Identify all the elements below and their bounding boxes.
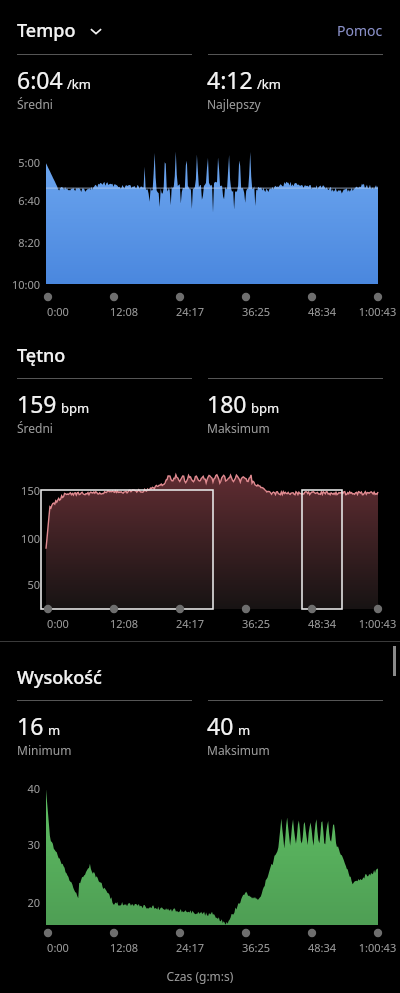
staticText: 48:34	[289, 616, 355, 631]
staticText: 20	[0, 895, 40, 910]
staticText: /km	[257, 75, 281, 93]
staticText: /km	[67, 75, 91, 93]
staticText: Pomoc	[337, 21, 383, 40]
staticText: 100	[0, 531, 40, 546]
staticText: 24:17	[157, 304, 223, 319]
staticText: 4:12	[207, 64, 253, 95]
staticText: 0:00	[25, 616, 91, 631]
staticText: 16	[17, 710, 44, 741]
staticText: bpm	[61, 399, 90, 417]
staticText: Maksimum	[207, 742, 270, 758]
staticText: 1:00:43	[355, 304, 400, 319]
staticText: 1:00:43	[355, 940, 400, 955]
staticText: 0:00	[25, 304, 91, 319]
staticText: 48:34	[289, 304, 355, 319]
staticText: 8:20	[0, 235, 40, 250]
staticText: m	[238, 721, 251, 739]
staticText: 24:17	[157, 940, 223, 955]
staticText: 12:08	[91, 940, 157, 955]
staticText: 30	[0, 837, 40, 852]
staticText: 50	[0, 577, 40, 592]
button[interactable]: Tętno	[17, 343, 66, 368]
staticText: Najlepszy	[207, 96, 261, 112]
staticText: 36:25	[223, 616, 289, 631]
staticText: 12:08	[91, 616, 157, 631]
staticText: 36:25	[223, 304, 289, 319]
staticText: Tętno	[17, 343, 66, 368]
button[interactable]: Wysokość	[17, 665, 102, 690]
staticText: m	[48, 721, 61, 739]
staticText: 159	[17, 388, 57, 419]
staticText: Czas (g:m:s)	[0, 968, 400, 984]
staticText: 150	[0, 483, 40, 498]
button[interactable]: Tempo	[17, 18, 104, 43]
staticText: Wysokość	[17, 665, 102, 690]
staticText: 24:17	[157, 616, 223, 631]
staticText: 180	[207, 388, 247, 419]
staticText: 0:00	[25, 940, 91, 955]
staticText: 5:00	[0, 155, 40, 170]
staticText: 10:00	[0, 277, 40, 292]
staticText: 40	[0, 781, 40, 796]
staticText: Średni	[17, 420, 53, 436]
staticText: Średni	[17, 96, 53, 112]
staticText: 40	[207, 710, 234, 741]
button[interactable]: Pomoc	[337, 21, 383, 40]
staticText: 12:08	[91, 304, 157, 319]
staticText: bpm	[251, 399, 280, 417]
staticText: 6:04	[17, 64, 63, 95]
staticText: 1:00:43	[355, 616, 400, 631]
staticText: Tempo	[17, 18, 76, 43]
staticText: 48:34	[289, 940, 355, 955]
staticText: 36:25	[223, 940, 289, 955]
staticText: Minimum	[17, 742, 72, 758]
staticText: 6:40	[0, 193, 40, 208]
staticText: Maksimum	[207, 420, 270, 436]
